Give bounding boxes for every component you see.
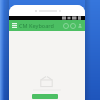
button[interactable]: Menu: [11, 22, 18, 29]
button[interactable]: [32, 94, 58, 99]
staticText: CM Keyboard: [19, 22, 54, 29]
button[interactable]: Profile: [76, 22, 83, 29]
button[interactable]: Search: [69, 22, 76, 29]
button[interactable]: Refresh: [62, 22, 69, 29]
